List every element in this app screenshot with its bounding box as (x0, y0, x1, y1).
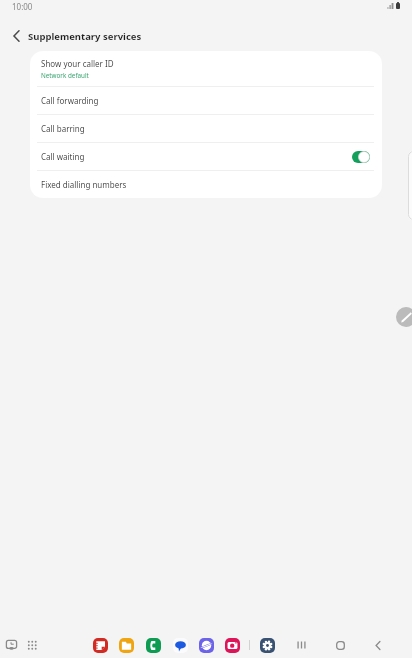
button[interactable]: Edge panel handle (408, 151, 412, 220)
staticText: Show your caller ID (41, 58, 114, 69)
button[interactable]: Settings (259, 637, 275, 653)
staticText: Fixed dialling numbers (41, 179, 127, 190)
button[interactable]: Home (329, 634, 351, 656)
button[interactable]: Call waiting switch, on (352, 151, 370, 163)
button[interactable]: Recent apps (2, 636, 20, 654)
button[interactable]: Fixed dialling numbers (30, 171, 382, 198)
button[interactable]: Notes (92, 637, 108, 653)
staticText: Call waiting (41, 151, 85, 162)
button[interactable]: Navigate up (0, 21, 28, 51)
button[interactable]: Call waiting (30, 143, 382, 170)
button[interactable]: Show your caller ID (30, 51, 382, 86)
button[interactable]: Internet (198, 637, 214, 653)
staticText: Supplementary services (28, 30, 142, 43)
button[interactable]: Camera (224, 637, 240, 653)
staticText: 10:00 (12, 1, 33, 12)
staticText: Call barring (41, 123, 85, 134)
button[interactable]: Call forwarding (30, 87, 382, 114)
staticText: Network default (41, 71, 89, 80)
button[interactable]: Back (367, 634, 389, 656)
button[interactable]: Call barring (30, 115, 382, 142)
button[interactable]: Edit (396, 307, 412, 327)
button[interactable]: Phone (145, 637, 161, 653)
button[interactable]: My Files (118, 637, 134, 653)
button[interactable]: All apps (24, 637, 40, 653)
staticText: Call forwarding (41, 95, 99, 106)
button[interactable]: Messages (172, 637, 188, 653)
button[interactable]: Recents (290, 634, 312, 656)
